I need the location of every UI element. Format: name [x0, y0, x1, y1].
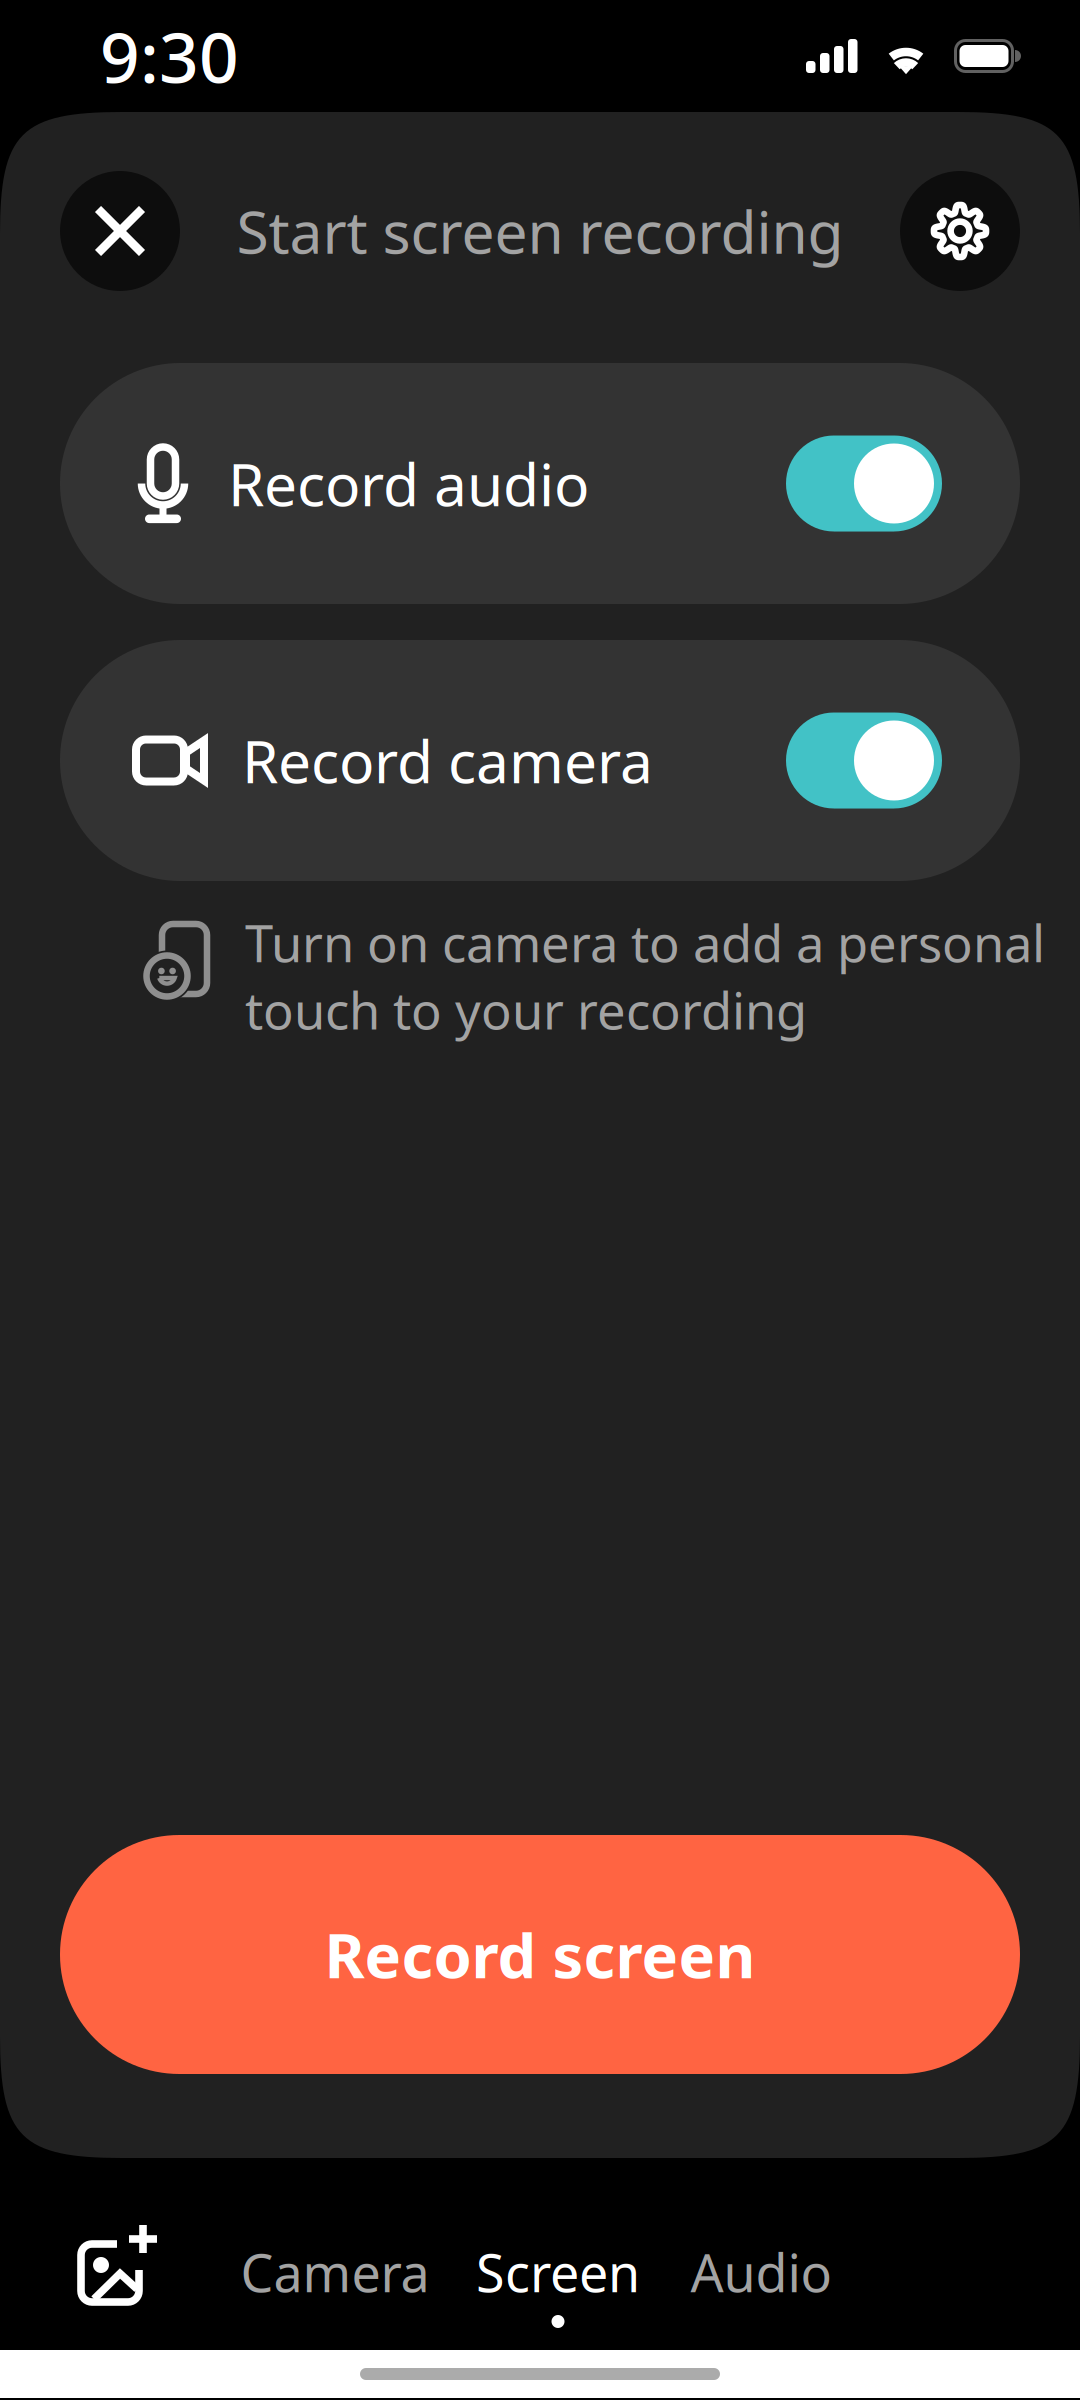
button[interactable]: Close: [60, 171, 180, 291]
button[interactable]: Settings: [900, 171, 1020, 291]
staticText: Record audio: [228, 444, 589, 522]
staticText: 9:30: [100, 10, 239, 102]
button[interactable]: Camera: [240, 2158, 430, 2350]
button[interactable]: Add media: [0, 2158, 240, 2350]
staticText: Camera: [240, 2237, 429, 2307]
button[interactable]: Screen: [472, 2158, 644, 2350]
staticText: Record camera: [242, 721, 653, 799]
staticText: Screen: [476, 2237, 640, 2307]
button[interactable]: Record camera: [60, 640, 1020, 881]
staticText: Record screen: [324, 1914, 755, 1995]
button[interactable]: Record screen: [60, 1835, 1020, 2074]
staticText: Start screen recording: [236, 192, 843, 270]
staticText: Turn on camera to add a personal touch t…: [245, 909, 1045, 1044]
staticText: Audio: [690, 2237, 831, 2307]
button[interactable]: Audio: [688, 2158, 834, 2350]
button[interactable]: Record audio: [60, 363, 1020, 604]
